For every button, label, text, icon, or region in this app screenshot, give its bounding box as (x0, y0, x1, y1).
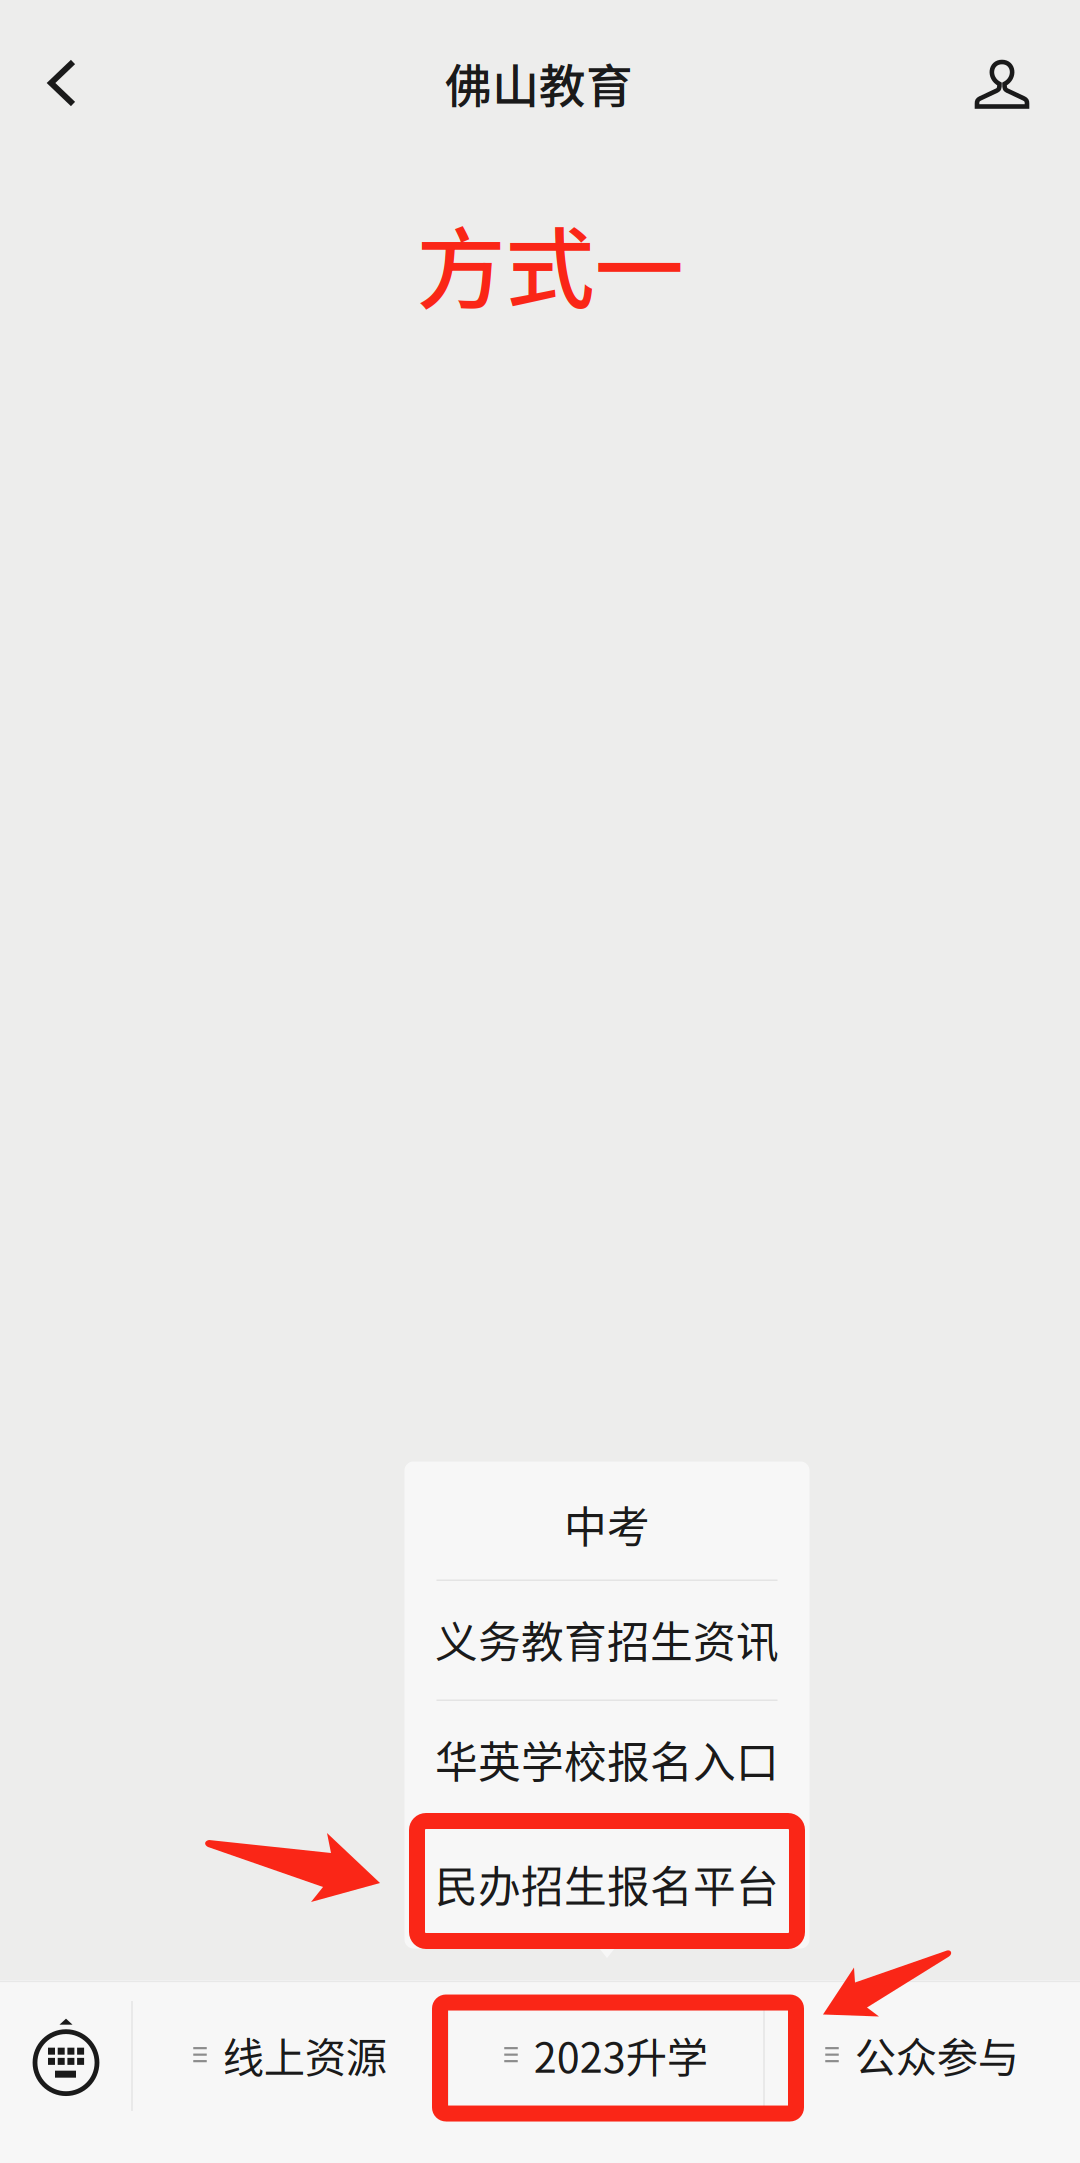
button[interactable]: 民办招生报名平台 (404, 1819, 809, 1948)
button[interactable]: 公众参与 (764, 1982, 1080, 2163)
button[interactable]: 线上资源 (132, 1982, 448, 2163)
button[interactable]: Back (7, 8, 117, 158)
staticText: 佛山教育 (445, 49, 633, 117)
staticText: 华英学校报名入口 (435, 1729, 779, 1790)
staticText: 民办招生报名平台 (435, 1853, 779, 1915)
staticText: 方式一 (416, 198, 683, 328)
button[interactable]: 华英学校报名入口 (404, 1699, 809, 1819)
staticText: 公众参与 (855, 2025, 1019, 2085)
button[interactable]: 2023升学 (448, 1982, 764, 2163)
button[interactable]: 义务教育招生资讯 (404, 1579, 809, 1699)
staticText: 线上资源 (223, 2025, 387, 2085)
staticText: 2023升学 (534, 2025, 708, 2085)
button[interactable]: Keyboard (0, 1982, 132, 2163)
button[interactable]: 中考 (404, 1461, 809, 1579)
button[interactable]: Profile (947, 9, 1057, 159)
staticText: 中考 (564, 1494, 650, 1555)
staticText: 义务教育招生资讯 (435, 1609, 779, 1670)
